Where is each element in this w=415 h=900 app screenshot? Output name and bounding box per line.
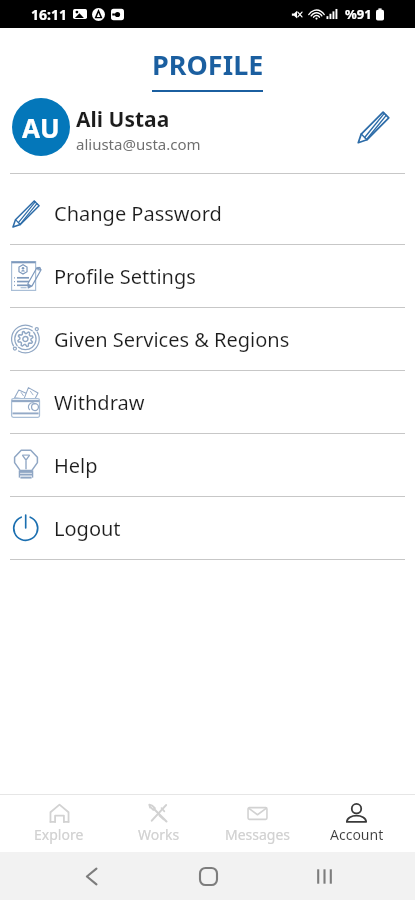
staticText: Explore [34,825,84,844]
staticText: Account [330,825,384,844]
button[interactable]: Logout [0,497,415,559]
staticText: %91 [345,5,372,23]
button[interactable]: Given Services & Regions [0,308,415,370]
button[interactable]: AU [0,98,415,156]
button[interactable]: Home [150,852,266,900]
staticText: 16:11 [31,5,67,24]
button[interactable]: Explore [9,803,109,844]
staticText: Works [138,825,180,844]
staticText: Messages [225,825,291,844]
staticText: Withdraw [54,389,145,416]
button[interactable]: Help [0,434,415,496]
staticText: aliusta@usta.com [76,134,201,154]
staticText: PROFILE [152,46,264,83]
button[interactable]: Account [307,803,406,844]
staticText: Given Services & Regions [54,326,290,353]
staticText: Profile Settings [54,263,196,290]
button[interactable]: Edit profile [351,105,395,149]
button[interactable]: Works [109,803,208,844]
staticText: Help [54,452,98,479]
button[interactable]: Recent apps [266,852,382,900]
button[interactable]: Messages [208,803,307,844]
button[interactable]: Change Password [0,183,415,244]
staticText: Logout [54,515,121,542]
button[interactable]: Profile Settings [0,245,415,307]
staticText: Change Password [54,200,222,227]
button[interactable]: Withdraw [0,371,415,433]
button[interactable]: Back [33,852,150,900]
staticText: AU [22,110,60,145]
staticText: Ali Ustaa [76,105,170,134]
